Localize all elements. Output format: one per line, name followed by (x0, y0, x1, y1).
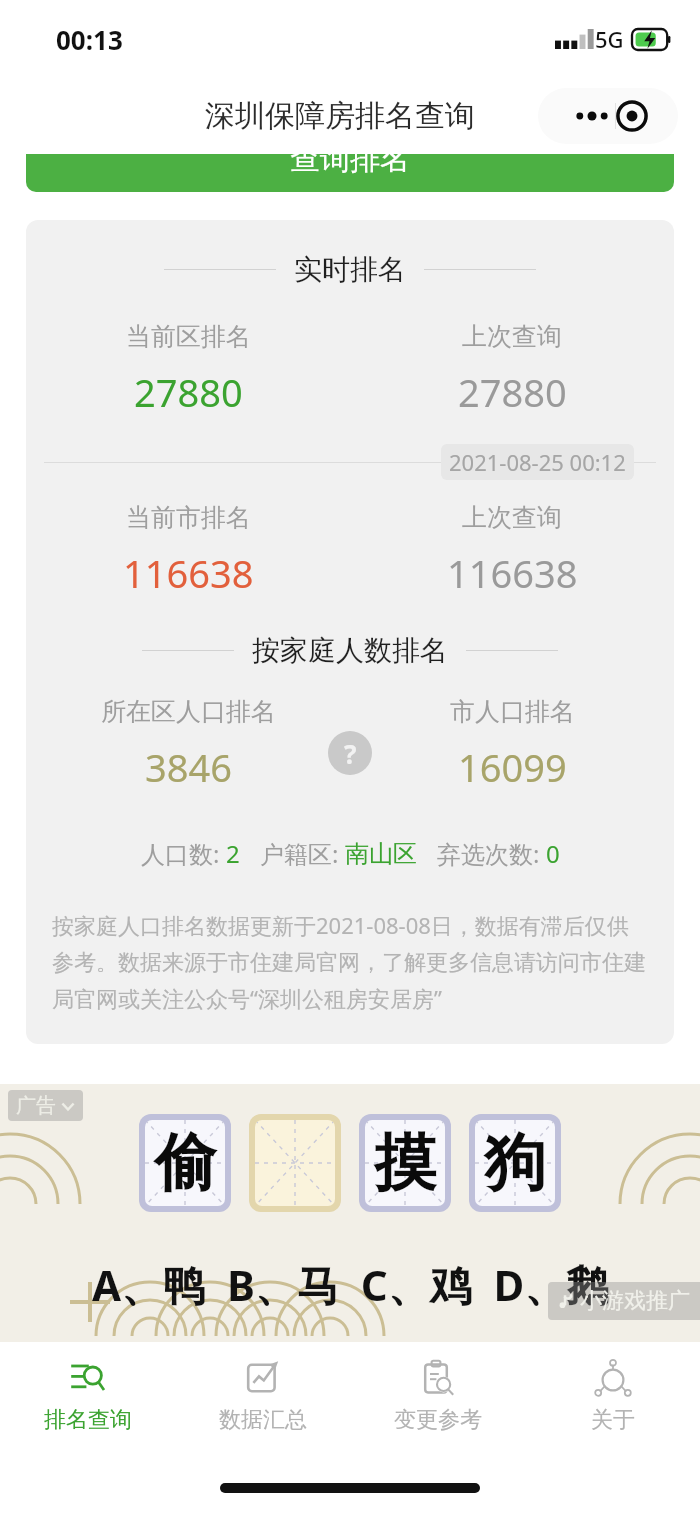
button[interactable]: 关于 (525, 1342, 700, 1450)
staticText: 0 (546, 837, 560, 870)
button[interactable]: Help about family size ranking (328, 731, 372, 775)
staticText: 116638 (447, 547, 578, 599)
staticText: 2021-08-25 00:12 (449, 447, 626, 477)
staticText: 2 (226, 837, 240, 870)
staticText: 27880 (458, 366, 567, 418)
staticText: 查询排名 (290, 154, 410, 178)
staticText: 小游戏推广 (580, 1287, 690, 1315)
staticText: 当前市排名 (126, 502, 251, 533)
staticText: 所在区人口排名 (101, 696, 276, 727)
staticText: 深圳保障房排名查询 (205, 97, 475, 135)
button[interactable]: Advertisement (0, 1084, 700, 1342)
button[interactable]: 数据汇总 (175, 1342, 350, 1450)
staticText: 户籍区: (260, 837, 345, 870)
staticText: 狗 (484, 1124, 546, 1202)
staticText: 关于 (591, 1406, 635, 1434)
staticText: 按家庭人口排名数据更新于2021-08-08日，数据有滞后仅供参考。数据来源于市… (52, 910, 648, 1014)
staticText: 上次查询 (462, 321, 562, 352)
staticText: 摸 (374, 1124, 436, 1202)
staticText: 排名查询 (44, 1406, 132, 1434)
staticText: 3846 (145, 741, 232, 793)
staticText: 16099 (458, 741, 567, 793)
staticText: 当前区排名 (126, 321, 251, 352)
staticText: 00:13 (56, 22, 123, 57)
staticText: 5G (595, 24, 624, 54)
staticText: 偷 (154, 1124, 216, 1202)
staticText: 人口数: (141, 837, 226, 870)
staticText: 弃选次数: (437, 837, 546, 870)
button[interactable]: More options and close mini program (538, 88, 678, 144)
button[interactable]: 查询排名 (26, 154, 674, 192)
staticText: 按家庭人数排名 (252, 633, 448, 668)
button[interactable]: 变更参考 (350, 1342, 525, 1450)
staticText: 实时排名 (294, 252, 406, 287)
staticText: 上次查询 (462, 502, 562, 533)
staticText: 南山区 (345, 839, 417, 869)
staticText: 116638 (123, 547, 254, 599)
staticText: 市人口排名 (450, 696, 575, 727)
staticText: 变更参考 (394, 1406, 482, 1434)
staticText: 数据汇总 (219, 1406, 307, 1434)
staticText: A、鸭 B、马 C、鸡 D、鹅 (92, 1256, 609, 1313)
staticText: 广告 (16, 1093, 56, 1118)
staticText: ? (344, 736, 357, 771)
button[interactable]: 排名查询 (0, 1342, 175, 1450)
staticText: 27880 (134, 366, 243, 418)
